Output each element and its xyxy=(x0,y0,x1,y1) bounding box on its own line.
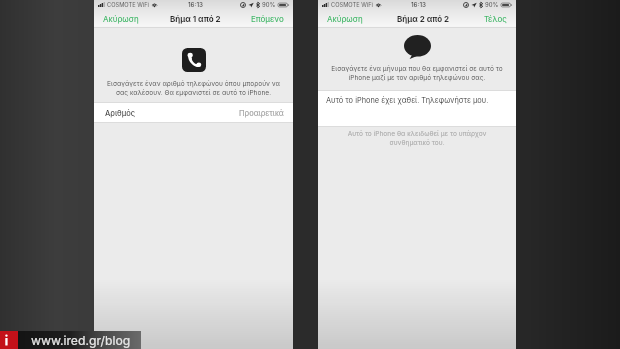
staticText: COSMOTE WiFi xyxy=(331,1,373,8)
staticText: Αυτό το iPhone έχει χαθεί. Τηλεφωνήστε μ… xyxy=(326,96,489,105)
other: ired.gr logo xyxy=(0,331,18,349)
button[interactable]: Ακύρωση xyxy=(102,11,140,27)
staticText: 90% xyxy=(262,1,276,8)
staticText: Αριθμός xyxy=(105,109,136,118)
staticText: Ακύρωση xyxy=(327,14,363,24)
staticText: Βήμα 1 από 2 xyxy=(170,14,221,24)
staticText: Βήμα 2 από 2 xyxy=(397,14,450,24)
button[interactable]: Τέλος xyxy=(483,11,508,27)
staticText: Τέλος xyxy=(484,14,507,24)
staticText: www.ired.gr/blog xyxy=(31,333,131,348)
staticText: Εισαγάγετε ένα μήνυμα που θα εμφανιστεί … xyxy=(329,65,505,81)
button[interactable]: Επόμενο xyxy=(250,11,285,27)
staticText: Ακύρωση xyxy=(103,14,139,24)
staticText: Προαιρετικά xyxy=(239,109,284,118)
button[interactable]: Αυτό το iPhone έχει χαθεί. Τηλεφωνήστε μ… xyxy=(318,91,516,126)
staticText: Επόμενο xyxy=(251,14,284,24)
staticText: COSMOTE WiFi xyxy=(107,1,149,8)
staticText: Αυτό το iPhone θα κλειδωθεί με το υπάρχο… xyxy=(340,130,494,146)
button[interactable]: Αριθμός xyxy=(94,103,293,122)
button[interactable]: Ακύρωση xyxy=(326,11,364,27)
staticText: 90% xyxy=(485,1,499,8)
staticText: 16:13 xyxy=(411,1,427,9)
staticText: Εισαγάγετε έναν αριθμό τηλεφώνου όπου μπ… xyxy=(105,80,282,96)
staticText: 16:13 xyxy=(188,1,204,9)
